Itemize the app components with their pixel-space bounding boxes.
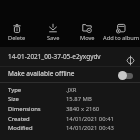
button[interactable]: Type xyxy=(0,86,140,95)
staticText: Add to album xyxy=(103,34,140,42)
button[interactable]: Delete xyxy=(0,23,37,42)
button[interactable]: Dimensions xyxy=(0,105,140,114)
staticText: Dimensions xyxy=(8,105,41,113)
staticText: Type xyxy=(8,86,22,94)
staticText: 3840 x 2160 xyxy=(66,105,100,113)
button[interactable]: Make available offline xyxy=(0,66,140,82)
staticText: 14-01-2021_00-37-05-e2yxgydv xyxy=(8,52,101,61)
button[interactable]: Move xyxy=(67,23,107,42)
staticText: .JXR xyxy=(66,86,77,94)
button[interactable]: Save xyxy=(33,23,73,42)
button[interactable]: Modified xyxy=(0,124,140,133)
staticText: Size xyxy=(8,95,19,103)
button[interactable]: Add to album xyxy=(101,23,140,42)
staticText: Move xyxy=(80,34,95,42)
staticText: Modified xyxy=(8,124,33,132)
button[interactable]: Size xyxy=(0,95,140,104)
staticText: Created xyxy=(8,115,30,123)
staticText: 15.87 MB xyxy=(66,95,92,103)
button[interactable]: 14-01-2021_00-37-05-e2yxgydv xyxy=(0,49,140,67)
staticText: Delete xyxy=(8,34,26,42)
staticText: Save xyxy=(47,34,60,42)
staticText: 14/01/2021 00:43 xyxy=(66,124,114,132)
staticText: Make available offline xyxy=(8,69,75,78)
button[interactable]: Created xyxy=(0,115,140,124)
staticText: 14/01/2021 00:41 xyxy=(66,115,114,123)
